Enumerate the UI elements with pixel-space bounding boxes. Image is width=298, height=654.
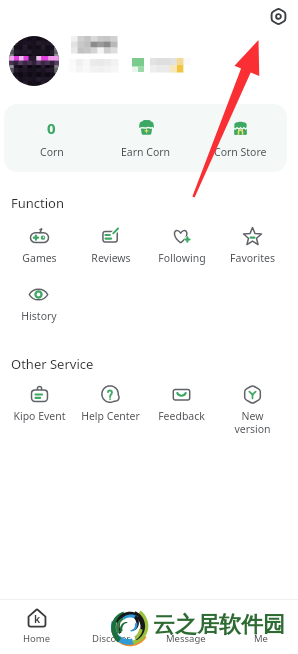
staticText: Kipo Event xyxy=(13,409,66,423)
button[interactable]: Settings xyxy=(270,8,287,25)
button[interactable]: Favorites xyxy=(217,226,288,265)
staticText: Corn xyxy=(40,145,64,159)
staticText: Following xyxy=(158,251,206,265)
button[interactable]: Message xyxy=(148,600,223,654)
button[interactable]: Corn Store xyxy=(193,104,287,172)
button[interactable]: Feedback xyxy=(146,384,217,423)
staticText: Discover xyxy=(92,632,131,645)
button[interactable]: Help Center xyxy=(75,384,146,423)
staticText: Message xyxy=(166,632,206,645)
button[interactable]: Earn Corn xyxy=(99,104,193,172)
staticText: 云之居软件园 xyxy=(153,611,285,639)
staticText: 0 xyxy=(47,118,56,136)
button[interactable] xyxy=(9,36,59,86)
button[interactable]: Me xyxy=(223,600,298,654)
button[interactable]: Discover xyxy=(74,600,148,654)
staticText: Me xyxy=(254,632,268,645)
staticText: Home xyxy=(23,632,51,645)
button[interactable]: New version xyxy=(217,384,288,436)
staticText: Other Service xyxy=(11,355,94,373)
button[interactable]: Following xyxy=(146,226,217,265)
button[interactable]: Games xyxy=(3,226,75,265)
staticText: New version xyxy=(234,409,271,436)
staticText: Corn Store xyxy=(214,145,267,159)
staticText: Help Center xyxy=(81,409,140,423)
staticText: Favorites xyxy=(230,251,275,265)
staticText: History xyxy=(21,309,57,323)
staticText: Reviews xyxy=(91,251,131,265)
staticText: Games xyxy=(22,251,57,265)
staticText: Function xyxy=(11,194,65,212)
button[interactable]: 0 xyxy=(4,104,99,172)
staticText: Earn Corn xyxy=(121,145,171,159)
button[interactable]: Reviews xyxy=(75,226,146,265)
button[interactable]: History xyxy=(3,284,74,323)
button[interactable]: k xyxy=(0,600,74,654)
staticText: Feedback xyxy=(158,409,205,423)
button[interactable]: Kipo Event xyxy=(3,384,75,423)
staticText: k xyxy=(34,612,41,626)
